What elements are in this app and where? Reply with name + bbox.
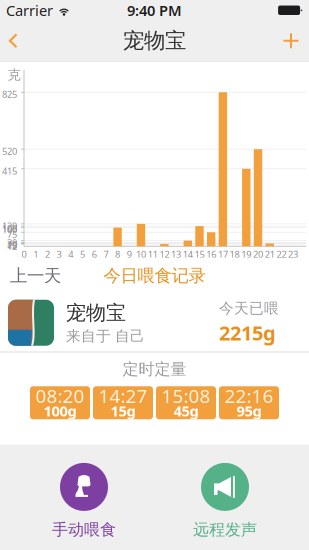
staticText: 定时定量 bbox=[122, 359, 186, 379]
button[interactable]: 14:27 bbox=[93, 386, 153, 419]
button[interactable]: 上一天 bbox=[0, 256, 73, 295]
staticText: 825 bbox=[2, 88, 17, 100]
staticText: 17 bbox=[218, 248, 228, 260]
staticText: 30 bbox=[7, 236, 17, 249]
staticText: 9 bbox=[127, 248, 132, 260]
staticText: 3 bbox=[57, 248, 62, 260]
button[interactable]: 手动喂食 bbox=[39, 457, 129, 546]
staticText: 宠物宝 bbox=[66, 300, 126, 325]
staticText: 23 bbox=[288, 248, 298, 260]
staticText: 12 bbox=[159, 248, 169, 260]
staticText: 95g bbox=[236, 401, 261, 420]
staticText: 5 bbox=[80, 248, 85, 260]
staticText: 18 bbox=[230, 248, 240, 260]
staticText: 100 bbox=[2, 223, 17, 236]
staticText: 19 bbox=[241, 248, 251, 260]
staticText: 6 bbox=[92, 248, 97, 260]
staticText: 22 bbox=[276, 248, 286, 260]
staticText: 宠物宝 bbox=[123, 28, 186, 54]
staticText: 16 bbox=[206, 248, 216, 260]
staticText: 14 bbox=[183, 248, 193, 260]
staticText: 100g bbox=[43, 401, 76, 420]
staticText: 2215g bbox=[219, 319, 276, 346]
staticText: 11 bbox=[148, 248, 158, 260]
staticText: 108 bbox=[2, 222, 17, 234]
staticText: 0 bbox=[21, 248, 26, 260]
button[interactable]: 22:16 bbox=[219, 386, 279, 419]
staticText: 来自于 自己 bbox=[66, 327, 145, 345]
staticText: 520 bbox=[2, 145, 17, 157]
staticText: 15:08 bbox=[161, 383, 210, 408]
staticText: 120 bbox=[2, 220, 17, 232]
staticText: 克 bbox=[7, 67, 20, 83]
staticText: 7 bbox=[103, 248, 108, 260]
staticText: 9:40 PM bbox=[127, 0, 182, 20]
staticText: 8 bbox=[115, 248, 120, 260]
staticText: Carrier bbox=[6, 0, 53, 20]
staticText: 14:27 bbox=[98, 383, 147, 408]
button[interactable]: 08:20 bbox=[30, 386, 90, 419]
staticText: 1 bbox=[33, 248, 38, 260]
staticText: 12 bbox=[7, 240, 17, 252]
staticText: 21 bbox=[265, 248, 275, 260]
staticText: 10 bbox=[136, 248, 146, 260]
staticText: 75 bbox=[7, 228, 17, 240]
staticText: 08:20 bbox=[35, 383, 84, 408]
staticText: 20 bbox=[253, 248, 263, 260]
staticText: 13 bbox=[171, 248, 181, 260]
staticText: 15g bbox=[110, 401, 135, 420]
staticText: 上一天 bbox=[10, 265, 61, 286]
button[interactable]: Add bbox=[269, 22, 309, 60]
staticText: 22:16 bbox=[224, 383, 273, 408]
staticText: 45g bbox=[173, 401, 198, 420]
staticText: 2 bbox=[45, 248, 50, 260]
staticText: 远程发声 bbox=[193, 520, 257, 540]
staticText: 今日喂食记录 bbox=[103, 265, 205, 286]
button[interactable]: 远程发声 bbox=[180, 457, 270, 546]
button[interactable]: 15:08 bbox=[156, 386, 216, 419]
staticText: 20 bbox=[7, 238, 17, 251]
staticText: 415 bbox=[2, 165, 17, 177]
staticText: 15 bbox=[194, 248, 204, 260]
button[interactable]: 宠物宝 bbox=[0, 294, 309, 352]
staticText: 15 bbox=[7, 239, 17, 252]
staticText: 今天已喂 bbox=[219, 299, 279, 317]
button[interactable]: Back bbox=[0, 21, 33, 60]
staticText: 4 bbox=[68, 248, 73, 260]
staticText: 手动喂食 bbox=[52, 520, 116, 540]
